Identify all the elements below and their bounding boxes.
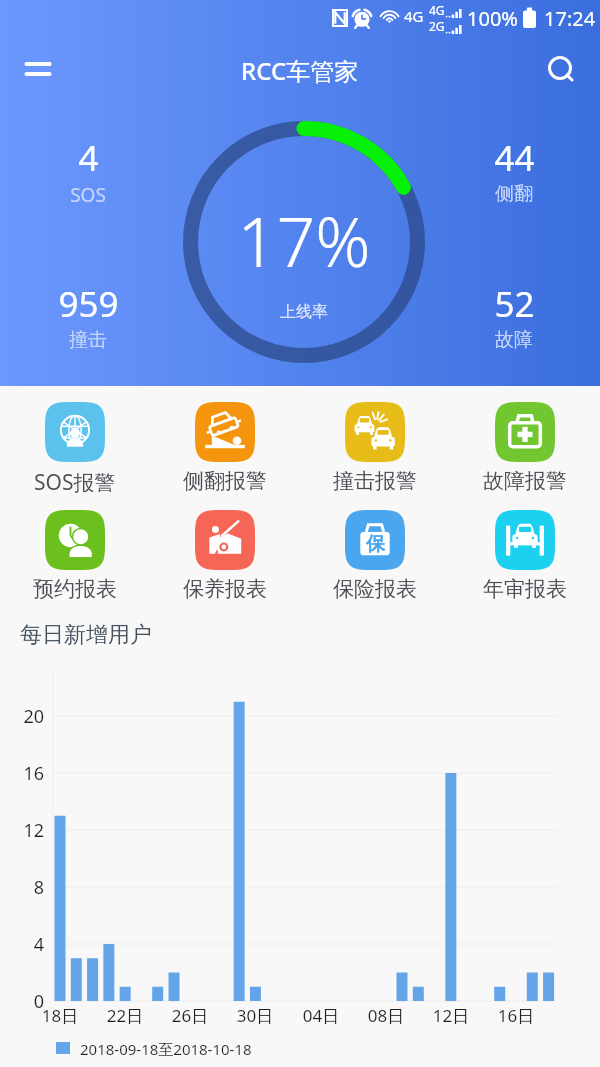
staticText: 上线率 — [183, 302, 425, 322]
staticText: 08日 — [346, 1004, 426, 1027]
staticText: 撞击报警 — [333, 468, 417, 494]
staticText: 44 — [494, 134, 535, 182]
staticText: 12日 — [411, 1004, 491, 1027]
staticText: 100% — [467, 5, 518, 32]
button[interactable]: Menu — [14, 46, 62, 94]
staticText: 30日 — [215, 1004, 295, 1027]
staticText: 年审报表 — [483, 576, 567, 602]
staticText: 18日 — [20, 1004, 100, 1027]
staticText: 2G — [429, 18, 445, 34]
staticText: 撞击 — [69, 328, 107, 352]
staticText: 17% — [183, 194, 425, 287]
staticText: 12 — [0, 818, 44, 843]
staticText: 04日 — [281, 1004, 361, 1027]
staticText: 8 — [0, 875, 44, 900]
button[interactable]: SOS报警 — [0, 402, 150, 497]
staticText: 22日 — [85, 1004, 165, 1027]
staticText: 16 — [0, 761, 44, 786]
button[interactable]: Search — [537, 46, 585, 94]
staticText: 保险报表 — [333, 576, 417, 602]
staticText: 0 — [0, 989, 44, 1014]
staticText: 2018-09-18至2018-10-18 — [80, 1039, 252, 1059]
button[interactable]: 保 — [300, 510, 450, 602]
staticText: 959 — [58, 280, 119, 328]
staticText: 16日 — [476, 1004, 556, 1027]
staticText: 侧翻 — [495, 182, 533, 206]
staticText: 4G — [404, 6, 424, 26]
staticText: 4 — [78, 134, 99, 182]
staticText: SOS报警 — [34, 468, 116, 497]
staticText: 保养报表 — [183, 576, 267, 602]
staticText: SOS — [70, 182, 106, 208]
button[interactable]: 年审报表 — [450, 510, 600, 602]
staticText: 保 — [366, 532, 385, 556]
button[interactable]: 预约报表 — [0, 510, 150, 602]
staticText: RCC车管家 — [241, 54, 359, 87]
staticText: 17:24 — [544, 5, 596, 32]
staticText: 故障报警 — [483, 468, 567, 494]
staticText: 故障 — [495, 328, 533, 352]
button[interactable]: 撞击报警 — [300, 402, 450, 494]
button[interactable]: 侧翻报警 — [150, 402, 300, 494]
staticText: 20 — [0, 704, 44, 729]
staticText: 26日 — [150, 1004, 230, 1027]
staticText: 每日新增用户 — [20, 621, 152, 649]
staticText: 4 — [0, 932, 44, 957]
button[interactable]: 保养报表 — [150, 510, 300, 602]
staticText: 52 — [494, 280, 535, 328]
staticText: 4G — [429, 2, 445, 18]
staticText: 侧翻报警 — [183, 468, 267, 494]
staticText: 预约报表 — [33, 576, 117, 602]
button[interactable]: 故障报警 — [450, 402, 600, 494]
